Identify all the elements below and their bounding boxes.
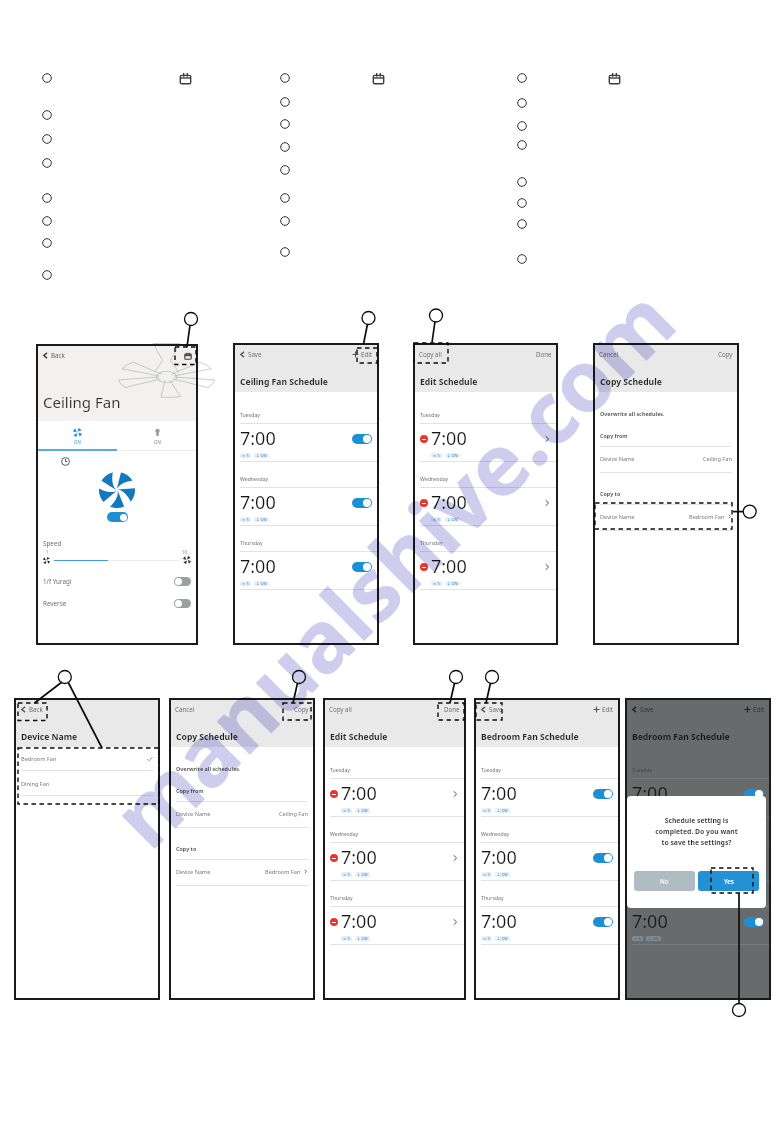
staticText: Thursday xyxy=(240,539,263,546)
button[interactable]: Copy xyxy=(716,348,735,360)
button[interactable]: Device Name xyxy=(594,504,738,529)
staticText: Overwrite all schedules. xyxy=(600,410,665,417)
button[interactable]: Bedroom Fan xyxy=(15,747,159,770)
staticText: Wednesday xyxy=(481,830,510,837)
staticText: Edit xyxy=(361,350,373,358)
staticText: Bedroom Fan xyxy=(689,513,725,521)
staticText: ≈ 5 xyxy=(634,936,641,941)
button[interactable]: On xyxy=(593,853,613,863)
button[interactable]: Copy xyxy=(292,703,311,715)
button[interactable]: Save xyxy=(237,348,264,360)
button[interactable]: Save xyxy=(629,703,656,715)
staticText: Bedroom Fan xyxy=(265,868,301,876)
button[interactable]: Cancel xyxy=(597,348,621,360)
button[interactable]: Dining Fan xyxy=(15,772,159,795)
button[interactable]: 7:00 xyxy=(324,906,465,944)
staticText: ↓ ON xyxy=(648,936,659,941)
staticText: Copy all xyxy=(419,350,442,358)
button[interactable]: No xyxy=(634,871,695,891)
staticText: Schedule setting is completed. Do you wa… xyxy=(652,816,741,847)
button[interactable]: Device Name xyxy=(170,801,314,826)
button[interactable]: Edit xyxy=(350,348,375,360)
button[interactable]: 7:00 xyxy=(414,487,557,525)
button[interactable]: Edit xyxy=(742,703,767,715)
button[interactable]: Edit xyxy=(591,703,616,715)
staticText: ≈ 5 xyxy=(242,517,249,522)
staticText: Dining Fan xyxy=(21,780,50,788)
button[interactable]: 7:00 xyxy=(414,551,557,589)
staticText: Done xyxy=(444,705,460,713)
button[interactable]: Device Name xyxy=(594,446,738,471)
button[interactable]: 7:00 xyxy=(234,423,378,461)
staticText: ≈ 5 xyxy=(343,872,350,877)
button[interactable]: 7:00 xyxy=(626,842,770,880)
staticText: Device Name xyxy=(176,810,211,818)
staticText: Device Name xyxy=(600,455,635,463)
button[interactable]: Done xyxy=(442,703,462,715)
staticText: ↓ ON xyxy=(447,453,458,458)
staticText: Tuesday xyxy=(481,766,501,773)
button[interactable]: ON xyxy=(37,421,117,451)
staticText: Ceiling Fan xyxy=(43,392,121,412)
staticText: Tuesday xyxy=(420,411,440,418)
staticText: Ceiling Fan xyxy=(703,455,732,463)
button[interactable]: 7:00 xyxy=(414,423,557,461)
staticText: Thursday xyxy=(481,894,504,901)
button[interactable]: Timer xyxy=(61,457,70,466)
button[interactable]: Save xyxy=(478,703,505,715)
button[interactable]: Cancel xyxy=(173,703,197,715)
staticText: Device Name xyxy=(176,868,211,876)
staticText: ↓ ON xyxy=(497,808,508,813)
button[interactable]: 7:00 xyxy=(324,778,465,816)
staticText: 1/f Yuragi xyxy=(43,577,72,586)
button[interactable]: Device Name xyxy=(170,859,314,884)
staticText: ↓ ON xyxy=(497,872,508,877)
staticText: Bedroom Fan Schedule xyxy=(481,731,579,743)
button[interactable]: Off xyxy=(174,577,191,586)
staticText: ↓ ON xyxy=(357,872,368,877)
staticText: Speed xyxy=(43,539,62,548)
button[interactable]: Done xyxy=(534,348,554,360)
button[interactable]: 1/f Yuragi xyxy=(37,576,197,587)
button[interactable]: 7:00 xyxy=(626,906,770,944)
staticText: Wednesday xyxy=(632,830,661,837)
staticText: ↓ ON xyxy=(497,936,508,941)
button[interactable]: Reverse xyxy=(37,598,197,609)
staticText: ≈ 5 xyxy=(433,453,440,458)
button[interactable]: On xyxy=(593,917,613,927)
button[interactable]: 7:00 xyxy=(475,842,619,880)
button[interactable]: Schedule xyxy=(181,349,194,362)
button[interactable]: On xyxy=(352,562,372,572)
staticText: 7:00 xyxy=(431,554,467,579)
staticText: ON xyxy=(74,439,81,445)
button[interactable]: On xyxy=(107,512,128,522)
staticText: ≈ 5 xyxy=(343,936,350,941)
button[interactable]: Yes xyxy=(698,871,759,891)
button[interactable]: 7:00 xyxy=(324,842,465,880)
staticText: Save xyxy=(248,350,262,358)
staticText: ≈ 5 xyxy=(483,808,490,813)
button[interactable]: Off xyxy=(174,599,191,608)
button[interactable]: 7:00 xyxy=(234,551,378,589)
button[interactable]: Copy all xyxy=(417,348,444,360)
staticText: 7:00 xyxy=(481,845,517,870)
button[interactable]: On xyxy=(352,498,372,508)
button[interactable]: Back xyxy=(40,349,67,361)
button[interactable]: 7:00 xyxy=(234,487,378,525)
button[interactable]: ON xyxy=(117,421,197,451)
button[interactable]: On xyxy=(352,434,372,444)
staticText: Copy Schedule xyxy=(600,376,662,388)
button[interactable]: On xyxy=(744,917,764,927)
staticText: Copy all xyxy=(329,705,352,713)
button[interactable]: Back xyxy=(18,703,45,715)
staticText: ↓ ON xyxy=(256,581,267,586)
button[interactable]: 7:00 xyxy=(475,906,619,944)
button[interactable]: 7:00 xyxy=(475,778,619,816)
button[interactable]: Copy all xyxy=(327,703,354,715)
button[interactable]: 7:00 xyxy=(626,778,770,816)
button[interactable]: On xyxy=(744,789,764,799)
button[interactable]: On xyxy=(593,789,613,799)
